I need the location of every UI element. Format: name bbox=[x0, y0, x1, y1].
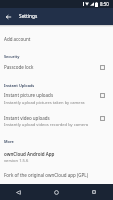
staticText: Security bbox=[4, 54, 20, 59]
staticText: Instant Uploads bbox=[4, 83, 35, 88]
button[interactable]: Recent apps bbox=[75, 184, 113, 200]
staticText: 8:50 bbox=[100, 1, 109, 7]
button[interactable]: Toggle bbox=[100, 65, 105, 70]
staticText: Instant video uploads bbox=[4, 115, 50, 121]
button[interactable]: Passcode lock bbox=[0, 64, 113, 77]
button[interactable]: Add account bbox=[0, 36, 113, 49]
staticText: Fork of the original ownCloud app (GPL) bbox=[4, 172, 89, 178]
button[interactable]: Navigate up bbox=[0, 8, 17, 25]
staticText: Instant picture uploads bbox=[4, 92, 54, 98]
staticText: Instantly upload videos recorded by came… bbox=[4, 122, 89, 128]
button[interactable]: Home bbox=[37, 184, 75, 200]
button[interactable]: Fork of the original ownCloud app (GPL) bbox=[0, 172, 113, 185]
staticText: Add account bbox=[4, 36, 31, 42]
button[interactable]: Instant picture uploads bbox=[0, 92, 113, 111]
button[interactable]: Instant video uploads bbox=[0, 115, 113, 134]
staticText: ownCloud Android App bbox=[4, 151, 55, 157]
button[interactable]: Toggle bbox=[100, 116, 105, 121]
staticText: More bbox=[4, 139, 14, 144]
staticText: version 1.5.6 bbox=[4, 158, 29, 164]
button[interactable]: Back bbox=[0, 184, 37, 200]
button[interactable]: ownCloud Android App bbox=[0, 151, 113, 170]
staticText: Instantly upload pictures taken by camer… bbox=[4, 100, 85, 106]
staticText: Passcode lock bbox=[4, 64, 34, 70]
staticText: Settings bbox=[19, 13, 38, 20]
button[interactable]: Toggle bbox=[100, 93, 105, 98]
